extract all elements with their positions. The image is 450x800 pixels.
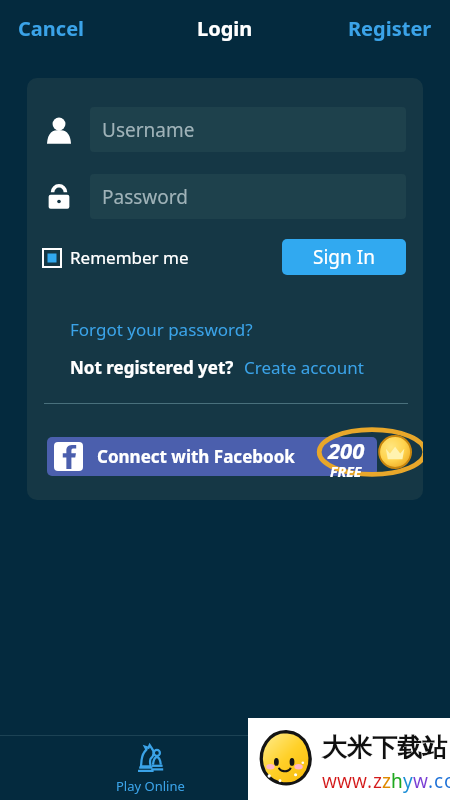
staticText: w xyxy=(337,768,352,794)
other: 200 free coins bonus xyxy=(317,424,423,480)
staticText: 200 xyxy=(328,435,365,465)
staticText: Remember me xyxy=(70,246,189,269)
staticText: z xyxy=(373,768,382,794)
button[interactable]: Cancel xyxy=(10,9,93,48)
button[interactable]: Create account xyxy=(240,352,368,383)
button[interactable]: Connect with Facebook xyxy=(47,437,377,476)
staticText: Create account xyxy=(244,356,364,379)
staticText: c xyxy=(434,768,444,794)
staticText: h xyxy=(391,768,403,794)
button[interactable]: Play Online xyxy=(110,735,190,800)
staticText: z xyxy=(382,768,391,794)
staticText: o xyxy=(444,768,450,794)
staticText: Login xyxy=(197,15,253,42)
button[interactable]: Sign In xyxy=(282,239,406,275)
staticText: Register xyxy=(348,15,432,42)
button[interactable]: Password xyxy=(90,174,406,219)
staticText: . xyxy=(428,768,434,794)
staticText: 大米下载站 xyxy=(322,732,447,763)
button[interactable]: Forgot your password? xyxy=(64,314,259,345)
button[interactable]: Username xyxy=(90,107,406,152)
staticText: . xyxy=(367,768,373,794)
button[interactable]: Register xyxy=(340,9,440,48)
staticText: y xyxy=(403,768,413,794)
staticText: w xyxy=(413,768,428,794)
staticText: w xyxy=(352,768,367,794)
staticText: Connect with Facebook xyxy=(97,445,295,468)
staticText: w xyxy=(322,768,337,794)
staticText: FREE xyxy=(330,462,362,481)
staticText: Play Online xyxy=(116,777,185,795)
staticText: Username xyxy=(102,117,195,143)
staticText: Sign In xyxy=(313,244,375,270)
staticText: Forgot your password? xyxy=(70,318,253,341)
staticText: Password xyxy=(102,184,188,210)
staticText: Not registered yet? xyxy=(70,356,234,379)
button[interactable]: Remember me xyxy=(40,243,192,272)
staticText: Cancel xyxy=(18,15,85,42)
